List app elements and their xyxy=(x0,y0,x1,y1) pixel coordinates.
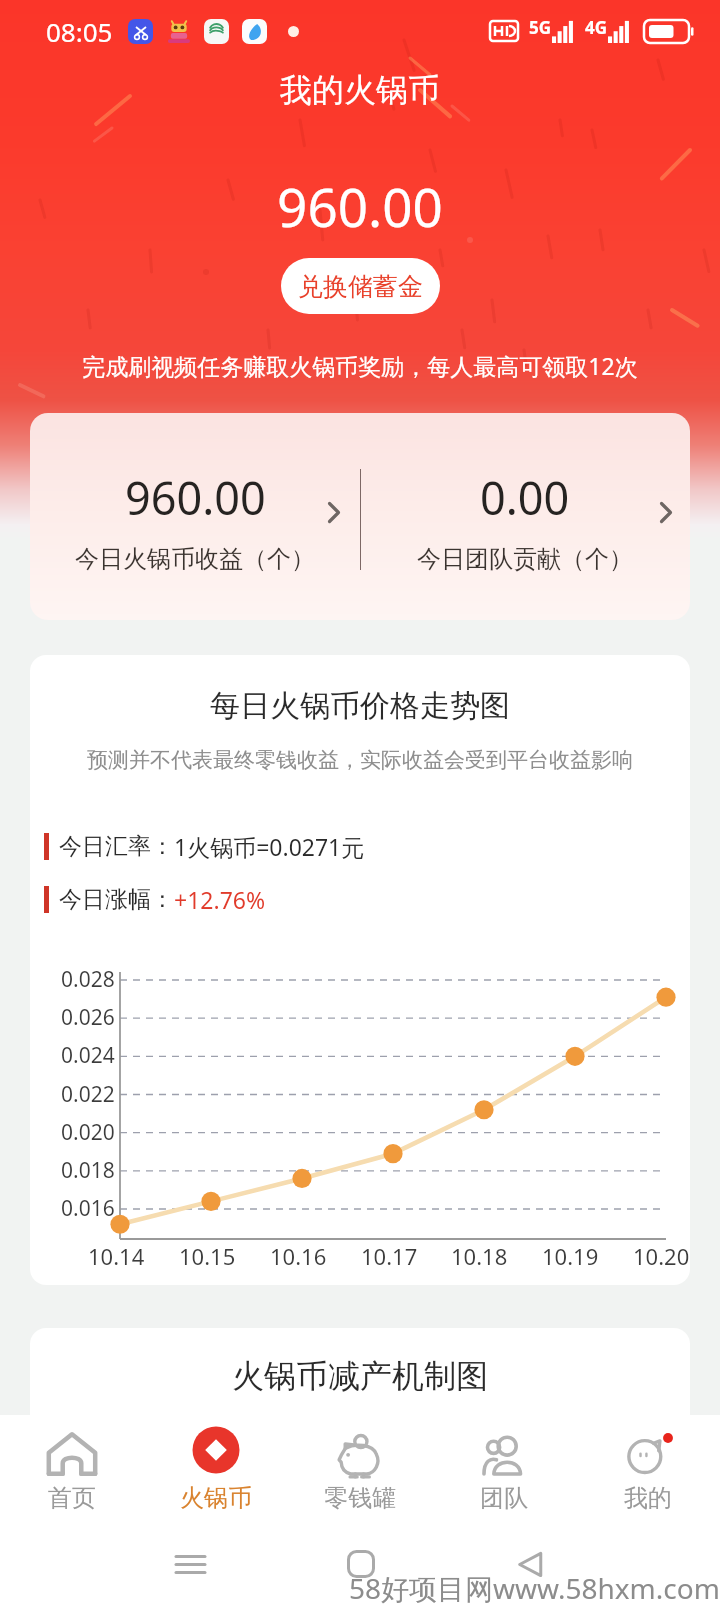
staticText: 0.00 xyxy=(480,467,570,528)
staticText: 完成刷视频任务赚取火锅币奖励，每人最高可领取12次 xyxy=(0,350,720,381)
staticText: 960.00 xyxy=(125,467,266,528)
staticText: 1火锅币=0.0271元 xyxy=(174,831,365,862)
other: Back xyxy=(517,1551,544,1578)
button[interactable]: 兑换储蓄金 xyxy=(281,258,440,314)
staticText: 今日涨幅： xyxy=(59,885,174,914)
staticText: 兑换储蓄金 xyxy=(298,271,423,302)
staticText: 0.022 xyxy=(61,1080,115,1109)
staticText: 10.19 xyxy=(542,1241,599,1271)
staticText: 每日火锅币价格走势图 xyxy=(30,687,690,725)
staticText: 0.020 xyxy=(61,1118,115,1147)
staticText: 5G xyxy=(529,16,552,39)
button[interactable]: 首页 xyxy=(0,1415,144,1522)
staticText: 10.18 xyxy=(451,1241,508,1271)
staticText: +12.76% xyxy=(174,884,266,915)
button[interactable]: 我的 xyxy=(576,1415,720,1522)
button[interactable]: 0.00 xyxy=(360,413,690,620)
other: Home xyxy=(347,1550,375,1578)
staticText: 火锅币 xyxy=(180,1483,252,1513)
staticText: 58好项目网www.58hxm.com xyxy=(349,1569,720,1607)
staticText: 0.028 xyxy=(61,965,115,994)
staticText: 今日汇率： xyxy=(59,832,174,861)
button[interactable]: 960.00 xyxy=(30,413,360,620)
staticText: 10.16 xyxy=(270,1241,327,1271)
staticText: 10.15 xyxy=(179,1241,236,1271)
staticText: 10.20 xyxy=(633,1241,690,1271)
staticText: 今日火锅币收益（个） xyxy=(75,544,315,574)
staticText: 火锅币减产机制图 xyxy=(30,1356,690,1396)
staticText: 4G xyxy=(585,16,608,39)
staticText: 预测并不代表最终零钱收益，实际收益会受到平台收益影响 xyxy=(30,747,690,773)
button[interactable]: 火锅币 xyxy=(144,1415,288,1522)
staticText: 0.016 xyxy=(61,1194,115,1223)
staticText: 零钱罐 xyxy=(324,1483,396,1513)
staticText: 10.14 xyxy=(88,1241,145,1271)
staticText: 团队 xyxy=(480,1483,528,1513)
staticText: 0.024 xyxy=(61,1041,115,1070)
button[interactable]: 零钱罐 xyxy=(288,1415,432,1522)
staticText: 960.00 xyxy=(0,170,720,242)
other: Recent apps xyxy=(176,1555,205,1574)
staticText: 我的 xyxy=(624,1483,672,1513)
staticText: 08:05 xyxy=(46,14,113,49)
staticText: 我的火锅币 xyxy=(0,70,720,110)
staticText: 首页 xyxy=(48,1483,96,1513)
button[interactable]: 团队 xyxy=(432,1415,576,1522)
staticText: 0.018 xyxy=(61,1156,115,1185)
staticText: 10.17 xyxy=(361,1241,418,1271)
staticText: 今日团队贡献（个） xyxy=(417,544,633,574)
staticText: 0.026 xyxy=(61,1003,115,1032)
